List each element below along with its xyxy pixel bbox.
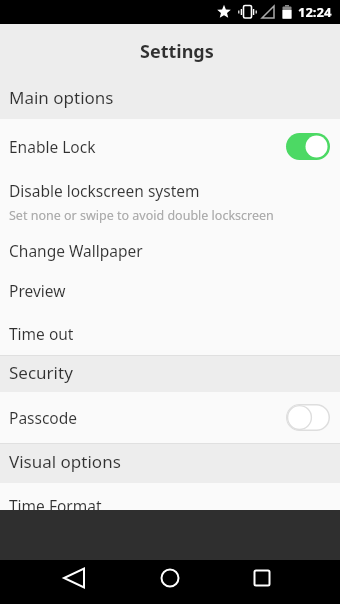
staticText: Set none or swipe to avoid double locksc… <box>9 207 274 224</box>
staticText: Settings <box>140 39 214 64</box>
button[interactable] <box>248 564 276 592</box>
button[interactable]: Passcode <box>0 392 340 443</box>
staticText: 12:24 <box>298 3 332 21</box>
staticText: Disable lockscreen system <box>9 180 200 201</box>
button[interactable] <box>60 564 88 592</box>
staticText: Time Format <box>9 495 102 516</box>
staticText: Time out <box>9 323 74 344</box>
staticText: Security <box>9 361 73 384</box>
staticText: Main options <box>9 86 114 109</box>
staticText: Visual options <box>9 450 121 473</box>
staticText: Passcode <box>9 407 78 428</box>
button[interactable]: Time Format <box>0 483 340 527</box>
button[interactable]: Preview <box>0 270 340 311</box>
button[interactable] <box>156 564 184 592</box>
button[interactable]: Enable Lock <box>0 119 340 173</box>
staticText: Change Wallpaper <box>9 240 143 261</box>
button[interactable]: Disable lockscreen system <box>0 173 340 230</box>
staticText: Preview <box>9 280 66 301</box>
button[interactable]: Time out <box>0 311 340 355</box>
button[interactable]: Change Wallpaper <box>0 230 340 270</box>
staticText: Enable Lock <box>9 136 96 157</box>
